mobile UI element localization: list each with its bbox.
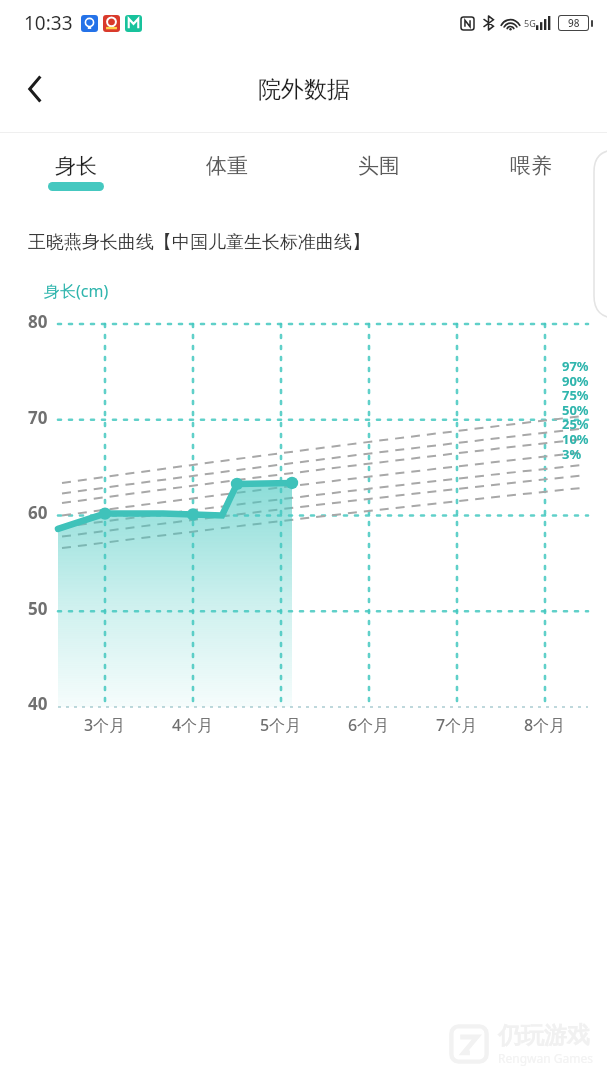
staticText: 院外数据	[258, 75, 350, 104]
staticText: 4个月	[172, 714, 214, 736]
button[interactable]: Back	[8, 62, 62, 116]
button[interactable]: 喂养	[455, 133, 607, 211]
staticText: 王晓燕身长曲线【中国儿童生长标准曲线】	[28, 231, 370, 254]
staticText: 仍玩游戏	[498, 1021, 590, 1050]
staticText: 5个月	[260, 714, 302, 736]
staticText: 40	[28, 692, 48, 715]
staticText: 50	[28, 597, 48, 620]
staticText: 3个月	[84, 714, 126, 736]
staticText: 10%	[562, 430, 589, 448]
staticText: 70	[28, 406, 48, 429]
staticText: 80	[28, 310, 48, 333]
staticText: 体重	[206, 153, 248, 179]
button[interactable]: 身长	[0, 133, 151, 211]
staticText: 98	[568, 16, 580, 30]
staticText: 6个月	[348, 714, 390, 736]
staticText: 身长(cm)	[44, 280, 109, 302]
staticText: 7个月	[436, 714, 478, 736]
staticText: 60	[28, 501, 48, 524]
staticText: 50%	[562, 401, 589, 419]
button[interactable]: 头围	[303, 133, 455, 211]
button[interactable]: 体重	[151, 133, 303, 211]
staticText: 10:33	[24, 10, 73, 36]
staticText: 25%	[562, 415, 589, 433]
staticText: 90%	[562, 372, 589, 390]
staticText: 3%	[562, 445, 582, 463]
staticText: 身长	[55, 153, 97, 179]
staticText: 头围	[358, 153, 400, 179]
staticText: 8个月	[524, 714, 566, 736]
staticText: 喂养	[510, 153, 552, 179]
staticText: 75%	[562, 386, 589, 404]
staticText: Rengwan Games	[498, 1050, 593, 1066]
staticText: 5G	[524, 17, 536, 29]
staticText: 97%	[562, 357, 589, 375]
